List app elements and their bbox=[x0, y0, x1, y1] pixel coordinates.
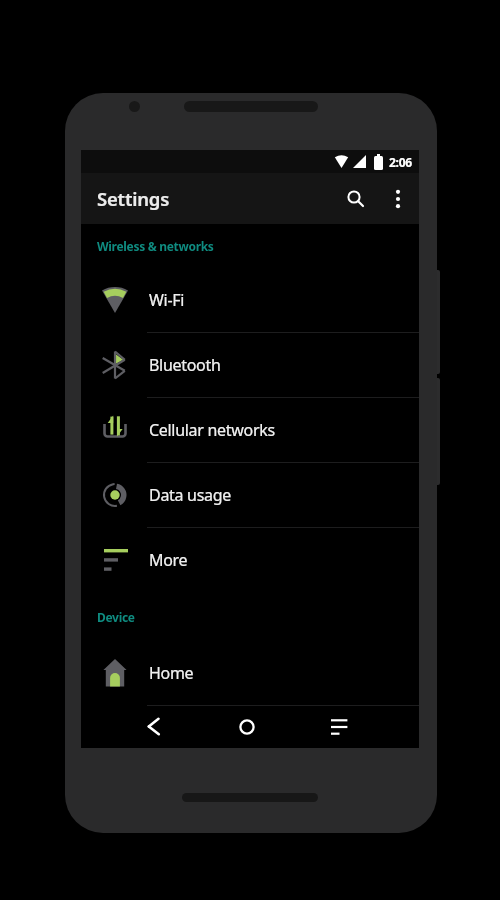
staticText: Cellular networks bbox=[149, 419, 275, 441]
staticText: Settings bbox=[97, 186, 170, 211]
staticText: Wi-Fi bbox=[149, 289, 185, 311]
staticText: Device bbox=[97, 609, 135, 625]
staticText: Bluetooth bbox=[149, 354, 221, 376]
staticText: Home bbox=[149, 662, 194, 684]
staticText: More bbox=[149, 549, 188, 571]
staticText: Data usage bbox=[149, 484, 231, 506]
staticText: Wireless & networks bbox=[97, 238, 214, 254]
button[interactable] bbox=[378, 179, 418, 219]
button[interactable] bbox=[318, 706, 362, 747]
button[interactable]: Bluetooth bbox=[81, 333, 419, 397]
button[interactable]: Home bbox=[81, 641, 419, 705]
button[interactable] bbox=[132, 706, 176, 747]
button[interactable]: Data usage bbox=[81, 463, 419, 527]
button[interactable] bbox=[334, 177, 378, 221]
button[interactable]: Wi-Fi bbox=[81, 268, 419, 332]
button[interactable] bbox=[225, 706, 269, 747]
button[interactable]: More bbox=[81, 528, 419, 592]
staticText: 2:06 bbox=[389, 154, 412, 170]
button[interactable]: Cellular networks bbox=[81, 398, 419, 462]
